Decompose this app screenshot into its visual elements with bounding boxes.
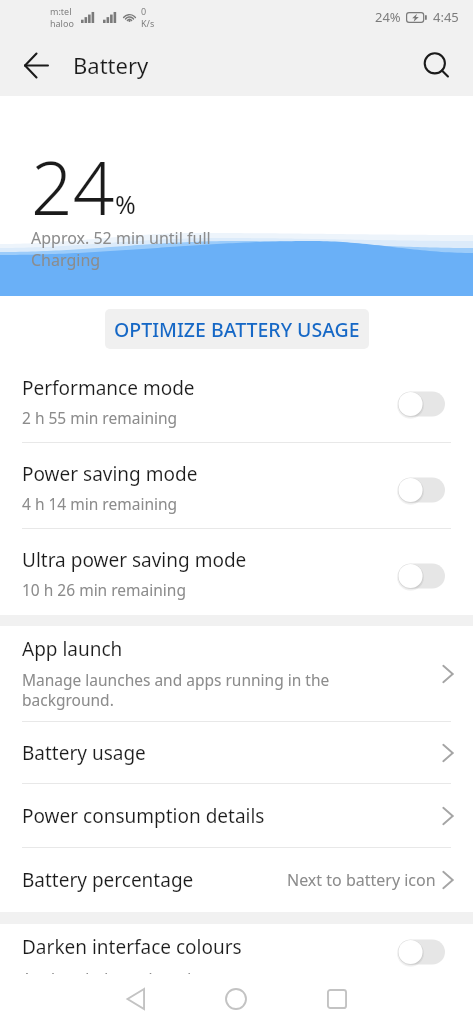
staticText: Performance mode [22,375,195,401]
button[interactable]: Darken interface colours [0,924,473,1024]
staticText: 2 h 55 min remaining [22,407,178,428]
staticText: 24% [375,8,401,26]
button[interactable]: Back [95,974,175,1024]
staticText: Battery [73,50,149,80]
staticText: 4:45 [433,8,459,26]
staticText: Battery percentage [22,867,194,893]
button[interactable]: Power saving mode [0,443,473,529]
button[interactable]: Power consumption details [0,784,473,848]
staticText: Approx. 52 min until full [31,227,211,249]
button[interactable]: Performance mode [0,357,473,443]
button[interactable]: Search [402,34,473,96]
button[interactable]: Battery usage [0,722,473,784]
button[interactable]: OPTIMIZE BATTERY USAGE [105,309,369,349]
button[interactable]: App launch [0,626,473,722]
staticText: Next to battery icon [287,869,436,891]
staticText: App launch [22,636,123,662]
staticText: Battery usage [22,740,146,766]
staticText: 0 [141,5,147,17]
staticText: OPTIMIZE BATTERY USAGE [114,316,360,343]
staticText: Ultra power saving mode [22,547,247,573]
staticText: Apply a darker color scheme to save powe… [22,968,337,989]
button[interactable]: Battery percentage [0,848,473,912]
staticText: Manage launches and apps running in the … [22,669,330,711]
staticText: Darken interface colours [22,934,242,960]
button[interactable]: Ultra power saving mode [0,529,473,615]
button[interactable]: Home [196,974,276,1024]
staticText: Power consumption details [22,803,265,829]
staticText: haloo [50,17,74,29]
button[interactable]: Recents [297,974,377,1024]
staticText: % [115,187,136,221]
staticText: 4 h 14 min remaining [22,493,178,514]
staticText: 24 [31,137,115,236]
staticText: 10 h 26 min remaining [22,579,186,600]
staticText: Power saving mode [22,461,198,487]
staticText: K/s [141,17,155,29]
staticText: Charging [31,249,101,271]
staticText: m:tel [50,5,72,17]
button[interactable]: Back [0,34,72,96]
